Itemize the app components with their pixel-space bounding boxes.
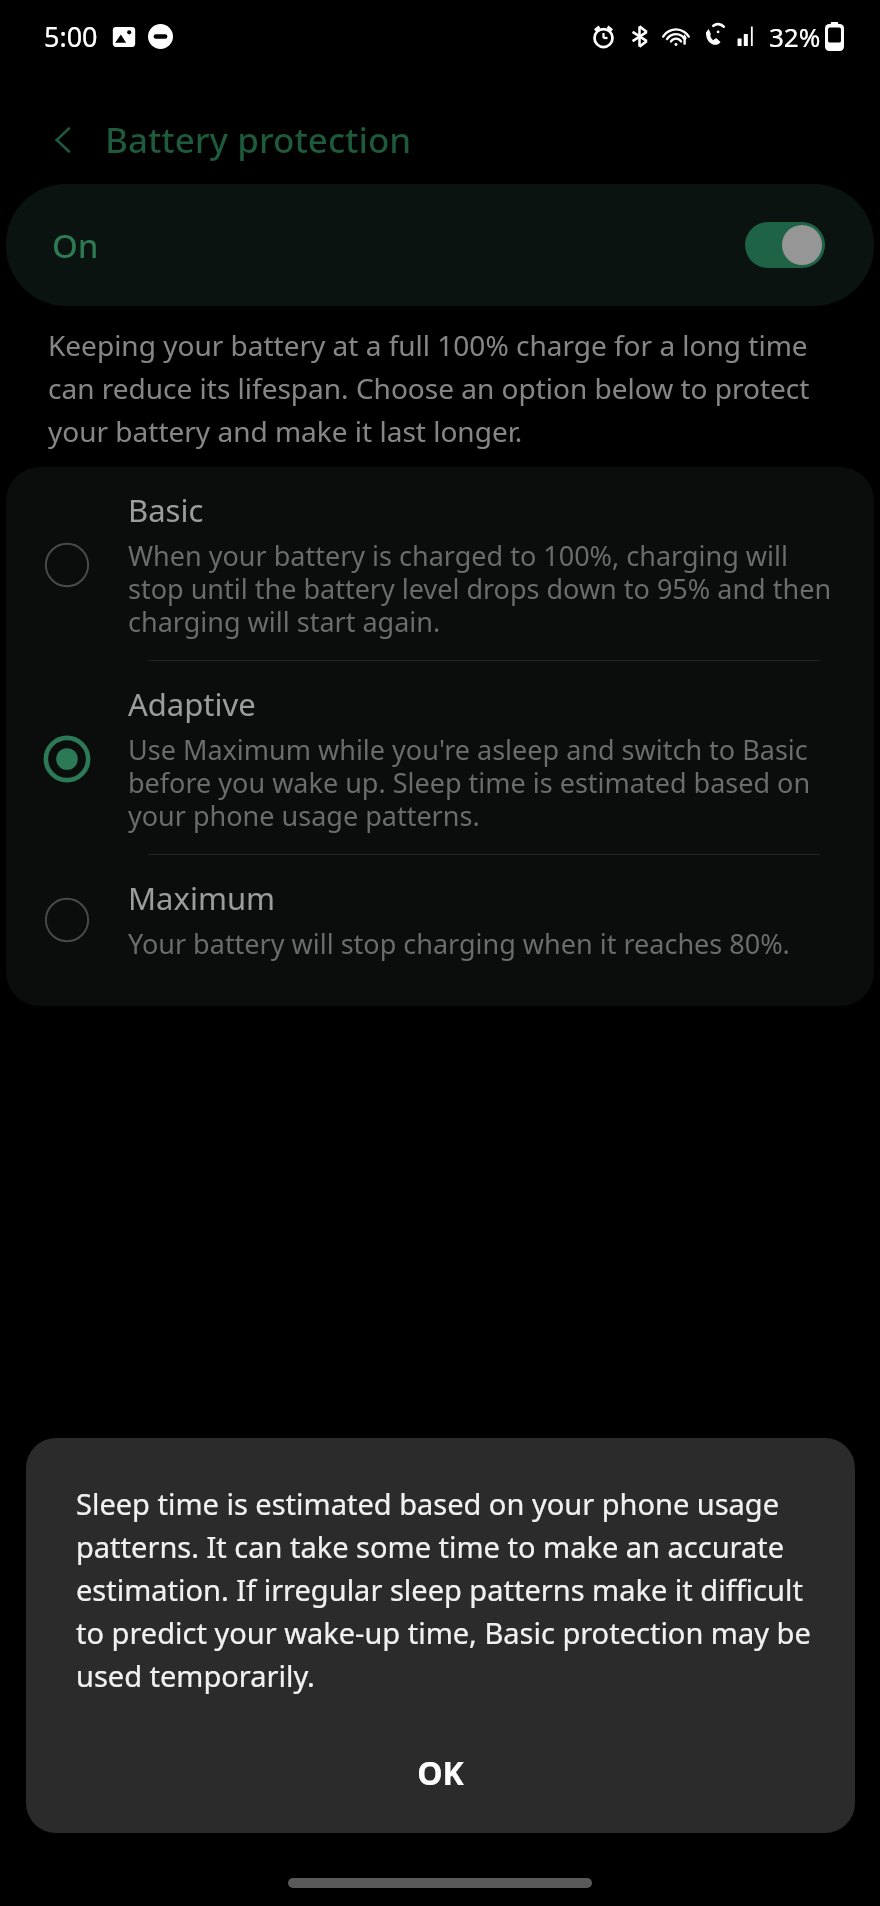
staticText: 5:00 <box>44 18 98 55</box>
staticText: OK <box>417 1751 464 1795</box>
staticText: Maximum <box>128 877 276 919</box>
staticText: Sleep time is estimated based on your ph… <box>76 1484 811 1695</box>
button[interactable]: Basic <box>6 467 874 660</box>
staticText: Battery protection <box>105 116 412 164</box>
staticText: When your battery is charged to 100%, ch… <box>128 537 850 640</box>
staticText: Use Maximum while you're asleep and swit… <box>128 731 850 834</box>
staticText: Adaptive <box>128 683 256 725</box>
staticText: Keeping your battery at a full 100% char… <box>48 326 840 450</box>
button[interactable]: On <box>6 184 874 306</box>
staticText: 32% <box>769 19 821 54</box>
staticText: On <box>52 223 99 268</box>
button[interactable]: Adaptive <box>6 661 874 854</box>
staticText: Basic <box>128 489 204 531</box>
button[interactable]: Back <box>40 116 88 164</box>
button[interactable]: Maximum <box>6 855 874 982</box>
button[interactable]: OK <box>26 1731 855 1815</box>
staticText: Your battery will stop charging when it … <box>128 925 790 962</box>
